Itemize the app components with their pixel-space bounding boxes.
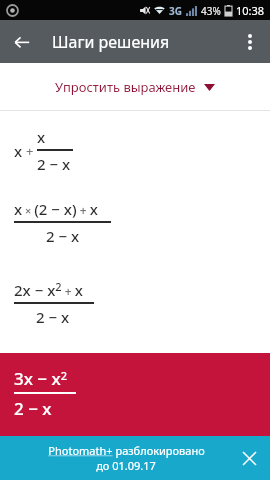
button[interactable]: x × (2 − x) + x [14,199,111,246]
button[interactable]: Back [0,20,43,63]
staticText: x [37,127,46,147]
staticText: Photomath+ разблокировано [48,443,205,458]
staticText: Упростить выражение [55,78,196,96]
staticText: Шаги решения [52,31,170,53]
staticText: 2 − x [37,154,71,174]
button[interactable]: 2x − x2 + x [14,279,94,327]
staticText: 3G [169,4,182,18]
button[interactable]: Упростить выражение [0,63,270,110]
staticText: до 01.09.17 [96,458,156,473]
button[interactable]: 3x − x2 [0,353,270,436]
staticText: 2 − x [46,226,80,246]
button[interactable]: Photomath+ разблокировано [0,436,270,480]
staticText: x [14,141,23,161]
button[interactable]: Close banner [234,443,264,473]
staticText: 3x − x2 [14,367,68,390]
staticText: 10:38 [236,3,265,18]
staticText: + [26,142,34,160]
button[interactable]: More options [230,22,270,62]
staticText: 2x − x2 + x [14,279,83,300]
staticText: 2 − x [36,307,70,327]
staticText: x × (2 − x) + x [14,199,98,219]
staticText: 43% [201,4,221,18]
button[interactable]: x [14,127,73,174]
staticText: 2 − x [14,397,52,420]
